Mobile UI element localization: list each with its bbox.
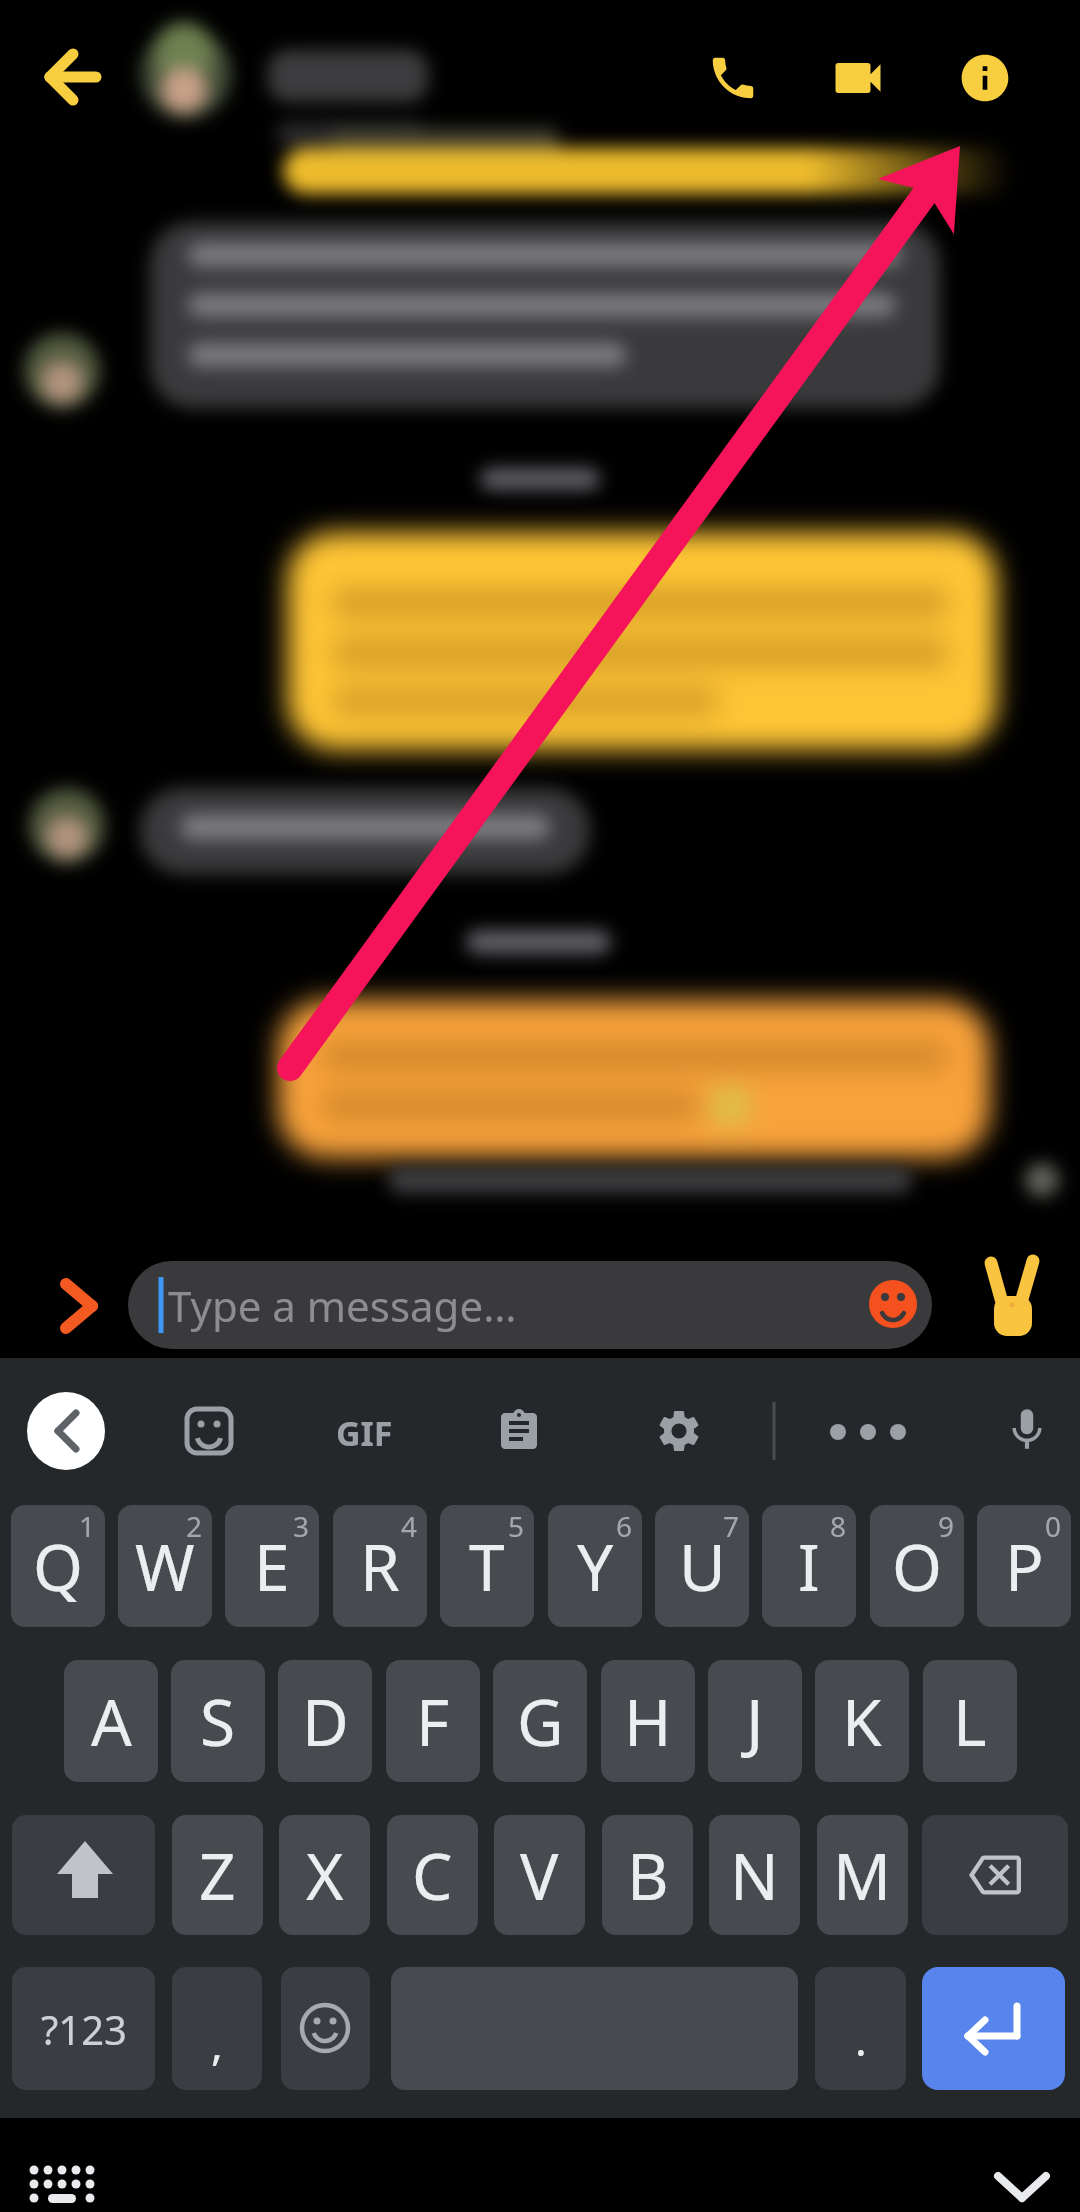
button[interactable] — [27, 1392, 105, 1470]
button[interactable]: H — [601, 1660, 695, 1782]
button[interactable]: N — [709, 1815, 800, 1935]
staticText: O — [892, 1523, 942, 1610]
button[interactable]: K — [815, 1660, 909, 1782]
button[interactable]: T — [440, 1505, 534, 1627]
button[interactable] — [985, 2155, 1060, 2212]
staticText: 3 — [293, 1507, 310, 1545]
button[interactable]: W — [118, 1505, 212, 1627]
staticText: 6 — [616, 1507, 633, 1545]
staticText: V — [520, 1832, 559, 1919]
staticText: D — [302, 1678, 349, 1765]
button[interactable]: D — [278, 1660, 372, 1782]
button[interactable]: O — [870, 1505, 964, 1627]
staticText: W — [135, 1523, 195, 1610]
button[interactable] — [975, 1258, 1065, 1348]
staticText: K — [842, 1678, 882, 1765]
button[interactable]: Type a message… — [128, 1261, 932, 1349]
button[interactable]: J — [708, 1660, 802, 1782]
button[interactable]: , — [172, 1967, 262, 2090]
button[interactable] — [640, 1392, 718, 1470]
staticText: 4 — [401, 1507, 418, 1545]
button[interactable]: B — [602, 1815, 693, 1935]
button[interactable]: L — [923, 1660, 1017, 1782]
button[interactable] — [480, 1392, 558, 1470]
button[interactable] — [829, 1392, 907, 1470]
staticText: ?123 — [41, 2002, 127, 2056]
button[interactable]: E — [225, 1505, 319, 1627]
staticText: E — [254, 1523, 290, 1610]
button[interactable] — [701, 46, 765, 110]
button[interactable]: S — [171, 1660, 265, 1782]
button[interactable] — [855, 1270, 931, 1340]
staticText: T — [469, 1523, 505, 1610]
staticText: 9 — [938, 1507, 955, 1545]
button[interactable] — [170, 1392, 248, 1470]
button[interactable] — [922, 1967, 1065, 2090]
staticText: S — [200, 1678, 236, 1765]
staticText: C — [412, 1832, 453, 1919]
button[interactable] — [20, 2155, 110, 2212]
button[interactable]: Z — [172, 1815, 263, 1935]
button[interactable]: Y — [548, 1505, 642, 1627]
staticText: A — [91, 1678, 132, 1765]
button[interactable] — [281, 1967, 370, 2090]
button[interactable] — [826, 46, 890, 110]
button[interactable] — [988, 1392, 1066, 1470]
staticText: Q — [33, 1523, 83, 1610]
button[interactable]: M — [817, 1815, 908, 1935]
button[interactable]: U — [655, 1505, 749, 1627]
button[interactable] — [40, 1270, 110, 1340]
staticText: 0 — [1045, 1507, 1062, 1545]
button[interactable]: I — [762, 1505, 856, 1627]
staticText: F — [416, 1678, 450, 1765]
button[interactable]: C — [387, 1815, 478, 1935]
staticText: M — [833, 1832, 892, 1919]
button[interactable]: . — [815, 1967, 906, 2090]
staticText: L — [953, 1678, 987, 1765]
button[interactable]: R — [333, 1505, 427, 1627]
staticText: J — [746, 1678, 764, 1765]
staticText: X — [306, 1832, 344, 1919]
button[interactable]: F — [386, 1660, 480, 1782]
button[interactable]: Q — [11, 1505, 105, 1627]
button[interactable]: G — [493, 1660, 587, 1782]
staticText: , — [211, 2013, 223, 2073]
staticText: N — [730, 1832, 779, 1919]
staticText: H — [624, 1678, 672, 1765]
staticText: I — [798, 1523, 820, 1610]
button[interactable]: X — [279, 1815, 370, 1935]
staticText: GIF — [336, 1410, 393, 1456]
staticText: U — [679, 1523, 726, 1610]
staticText: . — [855, 2009, 867, 2069]
staticText: 1 — [79, 1507, 96, 1545]
staticText: 2 — [186, 1507, 203, 1545]
button[interactable]: A — [64, 1660, 158, 1782]
staticText: 8 — [830, 1507, 847, 1545]
button[interactable] — [922, 1815, 1068, 1935]
staticText: Y — [577, 1523, 614, 1610]
button[interactable] — [12, 1815, 155, 1935]
staticText: B — [627, 1832, 669, 1919]
staticText: Z — [199, 1832, 236, 1919]
button[interactable] — [325, 1392, 403, 1470]
button[interactable] — [953, 46, 1017, 110]
button[interactable]: P — [977, 1505, 1071, 1627]
staticText: G — [517, 1678, 564, 1765]
button[interactable]: V — [494, 1815, 585, 1935]
button[interactable]: ?123 — [12, 1967, 155, 2090]
staticText: Type a message… — [168, 1277, 517, 1334]
button[interactable] — [40, 45, 104, 109]
staticText: R — [360, 1523, 400, 1610]
staticText: P — [1005, 1523, 1044, 1610]
staticText: 5 — [508, 1507, 525, 1545]
staticText: 7 — [723, 1507, 740, 1545]
